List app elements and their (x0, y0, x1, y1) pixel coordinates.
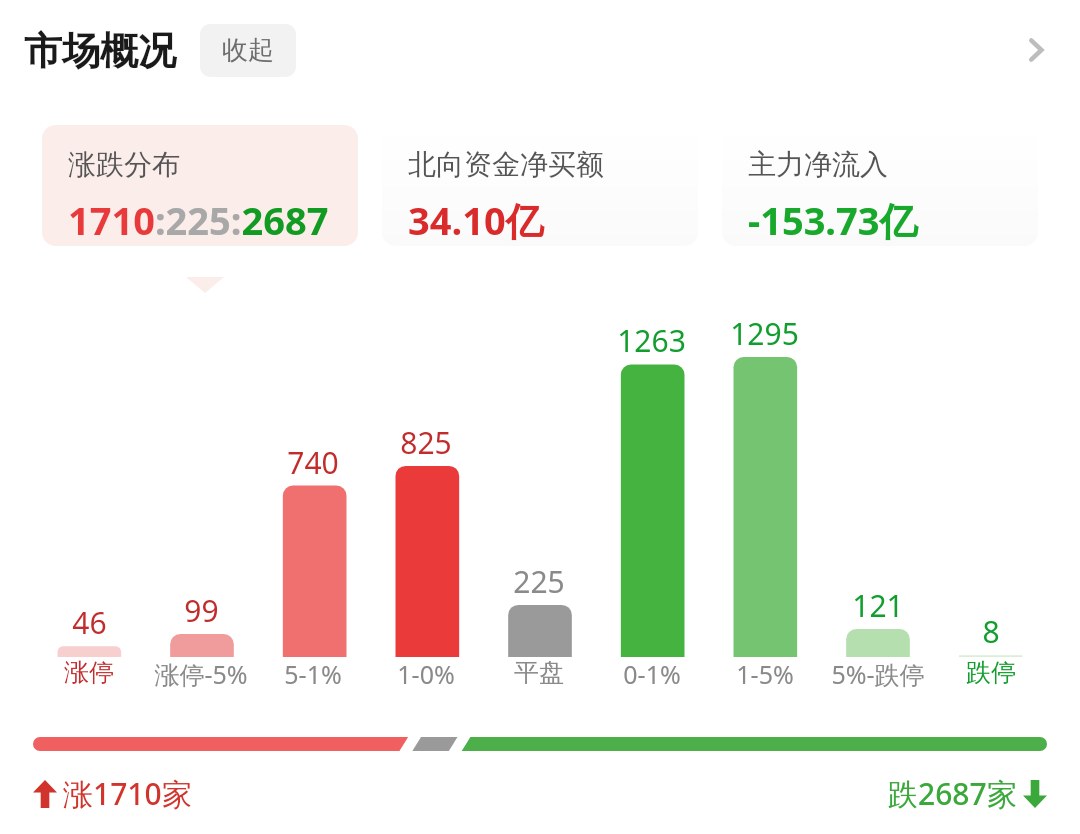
button[interactable]: More (1008, 22, 1064, 78)
staticText: 99 (184, 590, 219, 631)
staticText: 跌停 (966, 657, 1016, 688)
staticText: 1-5% (736, 657, 794, 691)
staticText: 平盘 (514, 657, 564, 688)
staticText: 5%-跌停 (831, 657, 925, 691)
staticText: 825 (400, 422, 452, 463)
staticText: 涨1710家 (63, 773, 192, 814)
staticText: 跌2687家 (888, 773, 1017, 814)
staticText: 1-0% (397, 657, 455, 691)
staticText: 北向资金净买额 (408, 147, 604, 182)
staticText: 1263 (617, 320, 686, 361)
button[interactable]: 主力净流入 (722, 125, 1038, 246)
staticText: 740 (287, 442, 339, 483)
staticText: 225 (513, 561, 565, 602)
staticText: 0-1% (623, 657, 681, 691)
staticText: 涨停 (64, 657, 114, 688)
button[interactable]: 北向资金净买额 (382, 125, 698, 246)
staticText: 34.10亿 (408, 194, 544, 246)
staticText: 8 (982, 611, 1000, 652)
staticText: 1295 (730, 313, 799, 354)
staticText: 5-1% (284, 657, 342, 691)
staticText: 1710:225:2687 (68, 194, 329, 246)
staticText: 涨跌分布 (68, 147, 180, 182)
staticText: 121 (852, 585, 904, 626)
staticText: 收起 (222, 34, 274, 67)
staticText: 46 (72, 602, 107, 643)
staticText: 市场概况 (24, 27, 176, 75)
staticText: 涨停-5% (154, 657, 248, 691)
staticText: -153.73亿 (748, 194, 918, 246)
staticText: 主力净流入 (748, 147, 888, 182)
button[interactable]: 涨跌分布 (42, 125, 358, 246)
button[interactable]: 收起 (200, 24, 296, 77)
